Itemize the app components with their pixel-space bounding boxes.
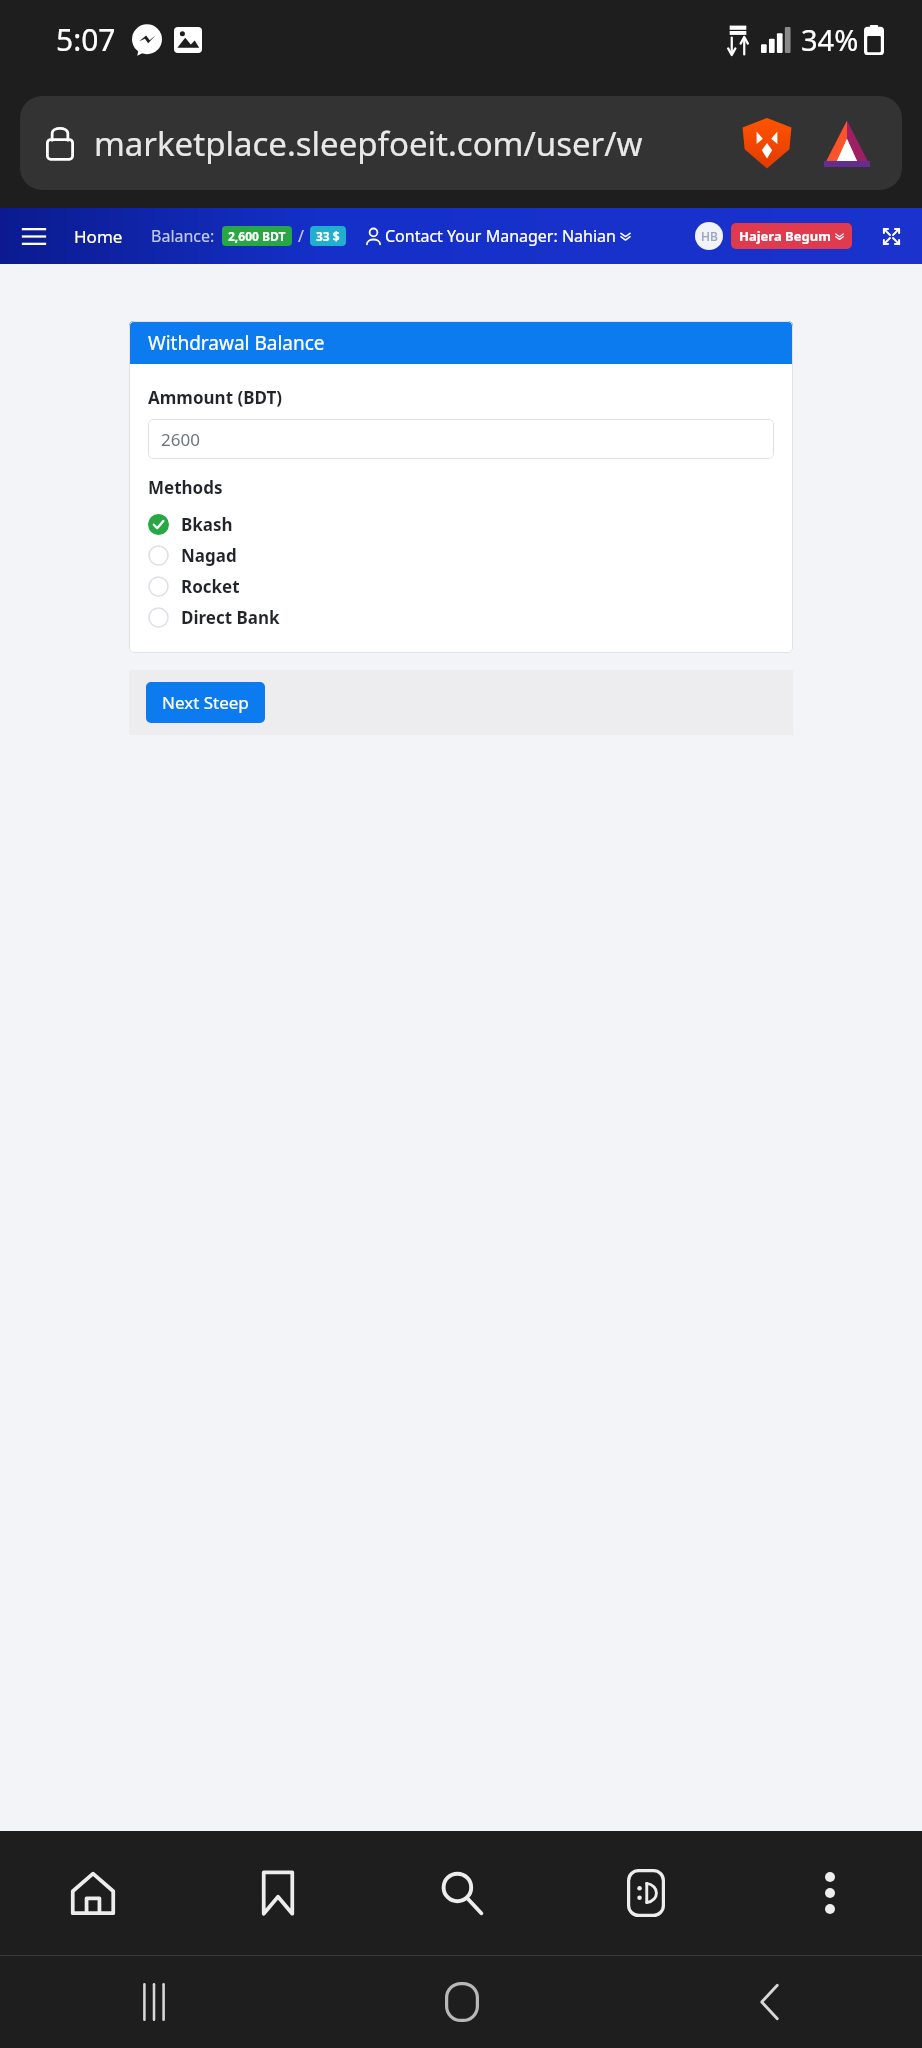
- button[interactable]: Search: [370, 1831, 554, 1955]
- staticText: 33 $: [316, 228, 340, 244]
- staticText: 2,600 BDT: [228, 228, 286, 244]
- button[interactable]: More options: [738, 1831, 922, 1955]
- button[interactable]: Nagad: [148, 540, 774, 571]
- button[interactable]: Direct Bank: [148, 602, 774, 633]
- button[interactable]: Brave Rewards: [818, 114, 876, 172]
- button[interactable]: Balance:: [151, 225, 346, 247]
- staticText: Bkash: [181, 513, 233, 536]
- staticText: HB: [701, 228, 718, 244]
- button[interactable]: marketplace.sleepfoeit.com/user/w: [20, 96, 902, 190]
- staticText: Direct Bank: [181, 606, 280, 629]
- staticText: marketplace.sleepfoeit.com/user/w: [94, 121, 728, 166]
- button[interactable]: Fullscreen: [874, 219, 908, 253]
- staticText: 5:07: [56, 19, 116, 60]
- button[interactable]: Tabs: [554, 1831, 738, 1955]
- button[interactable]: Home: [308, 1956, 615, 2048]
- staticText: Methods: [148, 476, 223, 499]
- staticText: Ammount (BDT): [148, 386, 283, 409]
- button[interactable]: Brave Shields: [738, 114, 796, 172]
- staticText: Home: [74, 225, 123, 248]
- button[interactable]: Back: [615, 1956, 922, 2048]
- button[interactable]: Contact Your Manager: Nahian: [366, 219, 631, 253]
- button[interactable]: Next Steep: [146, 682, 265, 723]
- button[interactable]: Bkash: [148, 509, 774, 540]
- staticText: Contact Your Manager: Nahian: [385, 225, 616, 247]
- staticText: Withdrawal Balance: [148, 330, 325, 356]
- button[interactable]: Menu: [16, 218, 52, 254]
- staticText: Hajera Begum: [739, 227, 831, 245]
- button[interactable]: Bookmarks: [185, 1831, 370, 1955]
- staticText: Balance:: [151, 225, 215, 247]
- staticText: 34%: [801, 20, 859, 59]
- button[interactable]: Recents: [0, 1956, 308, 2048]
- staticText: Rocket: [181, 575, 240, 598]
- staticText: Next Steep: [162, 691, 249, 714]
- staticText: /: [298, 225, 304, 247]
- button[interactable]: HB: [695, 222, 852, 250]
- staticText: 2600: [161, 428, 200, 451]
- button[interactable]: 2600: [148, 419, 774, 459]
- button[interactable]: Rocket: [148, 571, 774, 602]
- staticText: Nagad: [181, 544, 237, 567]
- button[interactable]: Home: [0, 1831, 185, 1955]
- button[interactable]: Home: [68, 219, 129, 254]
